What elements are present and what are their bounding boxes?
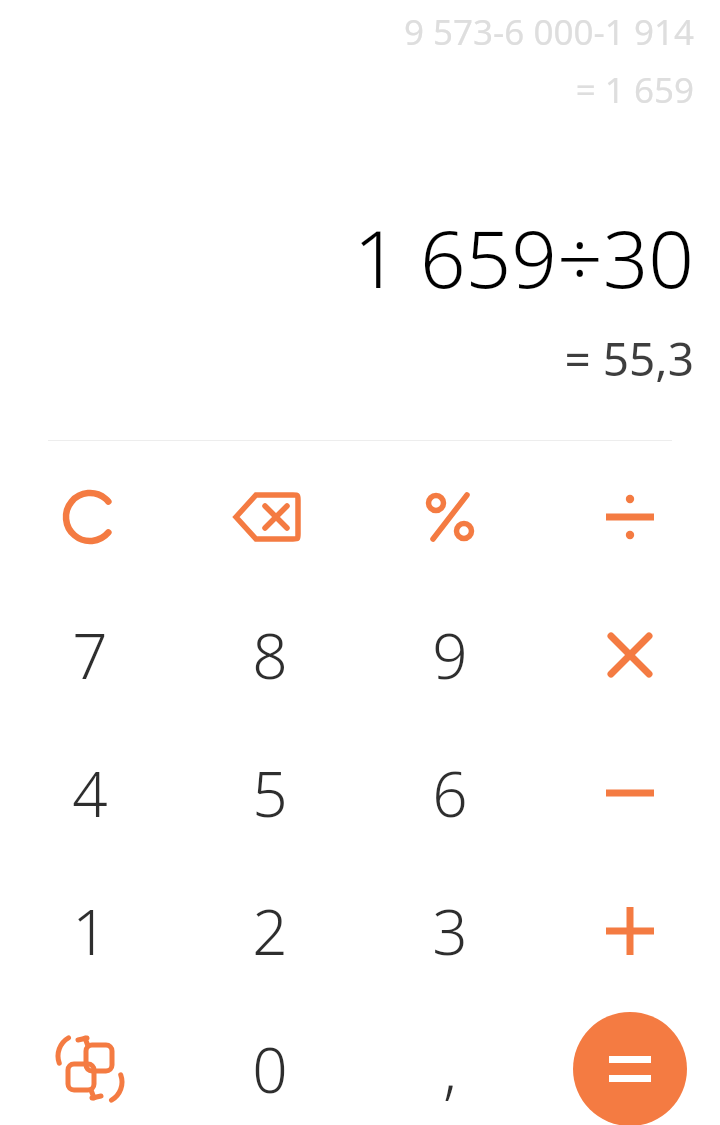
staticText: = 1 659 bbox=[24, 66, 694, 114]
button[interactable]: 1 bbox=[30, 876, 150, 986]
button[interactable]: Unit converter bbox=[30, 1014, 150, 1124]
button[interactable]: , bbox=[390, 1014, 510, 1124]
staticText: 9 bbox=[432, 613, 468, 697]
button[interactable]: 0 bbox=[210, 1014, 330, 1124]
button[interactable]: Percent bbox=[390, 462, 510, 572]
staticText: 1 659÷30 bbox=[24, 202, 694, 311]
button[interactable]: Divide bbox=[570, 462, 690, 572]
button[interactable]: 2 bbox=[210, 876, 330, 986]
button[interactable]: Plus bbox=[570, 876, 690, 986]
staticText: 6 bbox=[432, 751, 468, 835]
button[interactable]: Equals bbox=[573, 1012, 687, 1125]
staticText: 3 bbox=[432, 889, 468, 973]
staticText: 9 573-6 000-1 914 bbox=[24, 8, 694, 56]
button[interactable]: 3 bbox=[390, 876, 510, 986]
staticText: , bbox=[443, 1027, 457, 1111]
button[interactable]: 4 bbox=[30, 738, 150, 848]
button[interactable]: 8 bbox=[210, 600, 330, 710]
staticText: = 55,3 bbox=[24, 327, 694, 390]
button[interactable]: 7 bbox=[30, 600, 150, 710]
staticText: 1 bbox=[72, 889, 108, 973]
staticText: 7 bbox=[72, 613, 108, 697]
button[interactable]: Backspace bbox=[210, 462, 330, 572]
staticText: 8 bbox=[252, 613, 288, 697]
button[interactable]: 9 bbox=[390, 600, 510, 710]
staticText: 4 bbox=[72, 751, 108, 835]
staticText: 0 bbox=[252, 1027, 288, 1111]
button[interactable]: 5 bbox=[210, 738, 330, 848]
button[interactable]: Clear bbox=[30, 462, 150, 572]
staticText: 5 bbox=[252, 751, 288, 835]
staticText: 2 bbox=[252, 889, 288, 973]
button[interactable]: Multiply bbox=[570, 600, 690, 710]
button[interactable]: 6 bbox=[390, 738, 510, 848]
button[interactable]: Minus bbox=[570, 738, 690, 848]
